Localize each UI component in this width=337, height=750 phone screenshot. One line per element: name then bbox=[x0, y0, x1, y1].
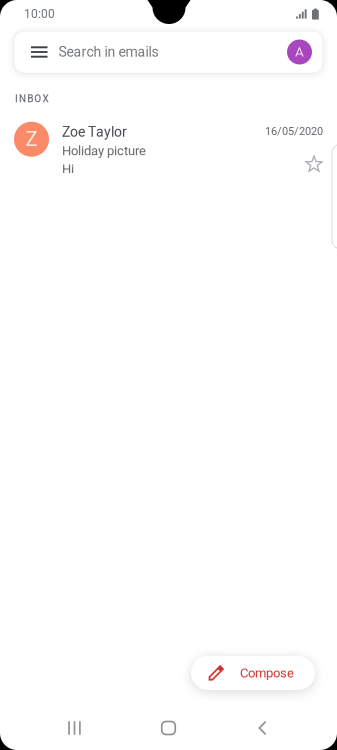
staticText: Holiday picture bbox=[62, 143, 146, 158]
button[interactable]: Home bbox=[121, 706, 215, 750]
staticText: Z bbox=[25, 127, 37, 151]
staticText: A bbox=[295, 44, 304, 60]
button[interactable]: Search in emails bbox=[14, 31, 323, 73]
staticText: INBOX bbox=[15, 93, 48, 105]
staticText: 10:00 bbox=[24, 7, 55, 21]
button[interactable]: Recent apps bbox=[27, 706, 121, 750]
staticText: Zoe Taylor bbox=[62, 124, 127, 140]
button[interactable]: Back bbox=[215, 706, 309, 750]
staticText: 16/05/2020 bbox=[265, 125, 323, 138]
button[interactable]: Compose bbox=[191, 656, 315, 690]
staticText: Compose bbox=[240, 665, 294, 681]
staticText: Search in emails bbox=[58, 44, 158, 60]
staticText: Hi bbox=[62, 161, 74, 177]
button[interactable]: Z bbox=[0, 122, 337, 177]
